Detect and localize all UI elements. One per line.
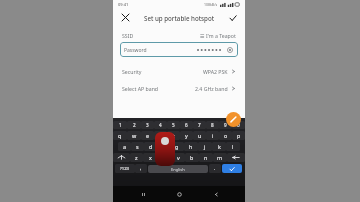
staticText: Security xyxy=(122,68,142,75)
button[interactable]: e xyxy=(141,131,154,140)
button[interactable]: 2 xyxy=(127,121,141,129)
staticText: n xyxy=(204,154,208,161)
button[interactable]: k xyxy=(212,142,226,151)
staticText: c xyxy=(163,154,166,161)
button[interactable]: l xyxy=(226,142,240,151)
button[interactable]: Recents xyxy=(136,187,150,201)
staticText: l xyxy=(232,143,234,150)
button[interactable]: 6 xyxy=(180,121,193,129)
button[interactable]: f xyxy=(157,142,170,151)
button[interactable]: m xyxy=(213,153,227,162)
button[interactable]: i xyxy=(206,131,219,140)
button[interactable]: Show password xyxy=(226,46,234,54)
staticText: Set up portable hotspot xyxy=(144,14,215,22)
button[interactable]: Security xyxy=(113,63,245,80)
staticText: 4 xyxy=(159,122,162,128)
staticText: ?123 xyxy=(120,166,130,172)
button[interactable]: a xyxy=(118,142,131,151)
staticText: English xyxy=(171,167,185,172)
staticText: a xyxy=(123,143,127,150)
button[interactable]: h xyxy=(184,142,198,151)
staticText: y xyxy=(185,132,188,139)
staticText: d xyxy=(149,143,153,150)
button[interactable]: Select AP band xyxy=(113,80,245,97)
staticText: j xyxy=(204,143,206,150)
button[interactable]: g xyxy=(170,142,184,151)
staticText: ☰ I'm a Teapot xyxy=(200,32,236,39)
button[interactable]: , xyxy=(135,164,147,173)
button[interactable]: v xyxy=(171,153,185,162)
button[interactable]: Enter xyxy=(222,164,242,173)
staticText: m xyxy=(217,154,223,161)
button[interactable]: d xyxy=(144,142,157,151)
button[interactable]: Shift xyxy=(113,153,130,162)
staticText: p xyxy=(237,132,241,139)
button[interactable]: Backspace xyxy=(227,153,245,162)
staticText: Password xyxy=(124,47,147,54)
staticText: 2 xyxy=(133,122,136,128)
staticText: 9 xyxy=(224,122,227,128)
staticText: , xyxy=(140,165,142,172)
button[interactable]: t xyxy=(167,131,180,140)
staticText: 0 xyxy=(237,122,240,128)
button[interactable]: Done xyxy=(226,11,239,24)
button[interactable]: r xyxy=(154,131,167,140)
button[interactable]: y xyxy=(180,131,193,140)
staticText: 3 xyxy=(146,122,149,128)
button[interactable]: Close xyxy=(119,11,132,24)
staticText: i xyxy=(212,132,214,139)
button[interactable]: 8 xyxy=(206,121,219,129)
button[interactable]: ?123 xyxy=(115,164,135,173)
button[interactable]: p xyxy=(232,131,245,140)
button[interactable]: SSID xyxy=(113,29,245,42)
staticText: o xyxy=(224,132,228,139)
button[interactable]: n xyxy=(199,153,213,162)
staticText: Select AP band xyxy=(122,85,159,92)
staticText: t xyxy=(173,132,175,139)
button[interactable]: b xyxy=(185,153,199,162)
staticText: q xyxy=(118,132,122,139)
staticText: WPA2 PSK xyxy=(203,68,228,75)
button[interactable]: Home xyxy=(172,187,186,201)
button[interactable]: 7 xyxy=(193,121,206,129)
button[interactable]: c xyxy=(157,153,171,162)
button[interactable]: 9 xyxy=(219,121,232,129)
staticText: 108kB/s xyxy=(204,2,218,7)
button[interactable]: . xyxy=(209,164,221,173)
staticText: 1 xyxy=(119,122,122,128)
button[interactable]: z xyxy=(130,153,143,162)
button[interactable]: English xyxy=(148,165,208,173)
staticText: h xyxy=(189,143,193,150)
staticText: e xyxy=(146,132,150,139)
button[interactable]: u xyxy=(193,131,206,140)
button[interactable]: j xyxy=(198,142,212,151)
button[interactable]: x xyxy=(143,153,157,162)
button[interactable]: q xyxy=(113,131,127,140)
staticText: k xyxy=(218,143,221,150)
button[interactable]: w xyxy=(127,131,141,140)
staticText: s xyxy=(136,143,139,150)
staticText: SSID xyxy=(122,32,134,39)
staticText: 5 xyxy=(172,122,175,128)
staticText: 6 xyxy=(185,122,188,128)
button[interactable]: Password xyxy=(120,42,238,57)
button[interactable]: 5 xyxy=(167,121,180,129)
button[interactable]: 0 xyxy=(232,121,245,129)
staticText: 7 xyxy=(198,122,201,128)
staticText: w xyxy=(132,132,137,139)
button[interactable]: Edit xyxy=(226,112,241,127)
staticText: r xyxy=(159,132,162,139)
staticText: b xyxy=(190,154,194,161)
staticText: f xyxy=(163,143,165,150)
button[interactable]: Back xyxy=(209,187,223,201)
staticText: 2.4 GHz band xyxy=(195,85,228,92)
staticText: 8 xyxy=(211,122,214,128)
staticText: . xyxy=(214,165,216,172)
button[interactable]: 3 xyxy=(141,121,154,129)
staticText: 09:41 xyxy=(118,2,129,7)
button[interactable]: 1 xyxy=(113,121,127,129)
staticText: g xyxy=(175,143,179,150)
button[interactable]: s xyxy=(131,142,144,151)
button[interactable]: 4 xyxy=(154,121,167,129)
button[interactable]: o xyxy=(219,131,232,140)
